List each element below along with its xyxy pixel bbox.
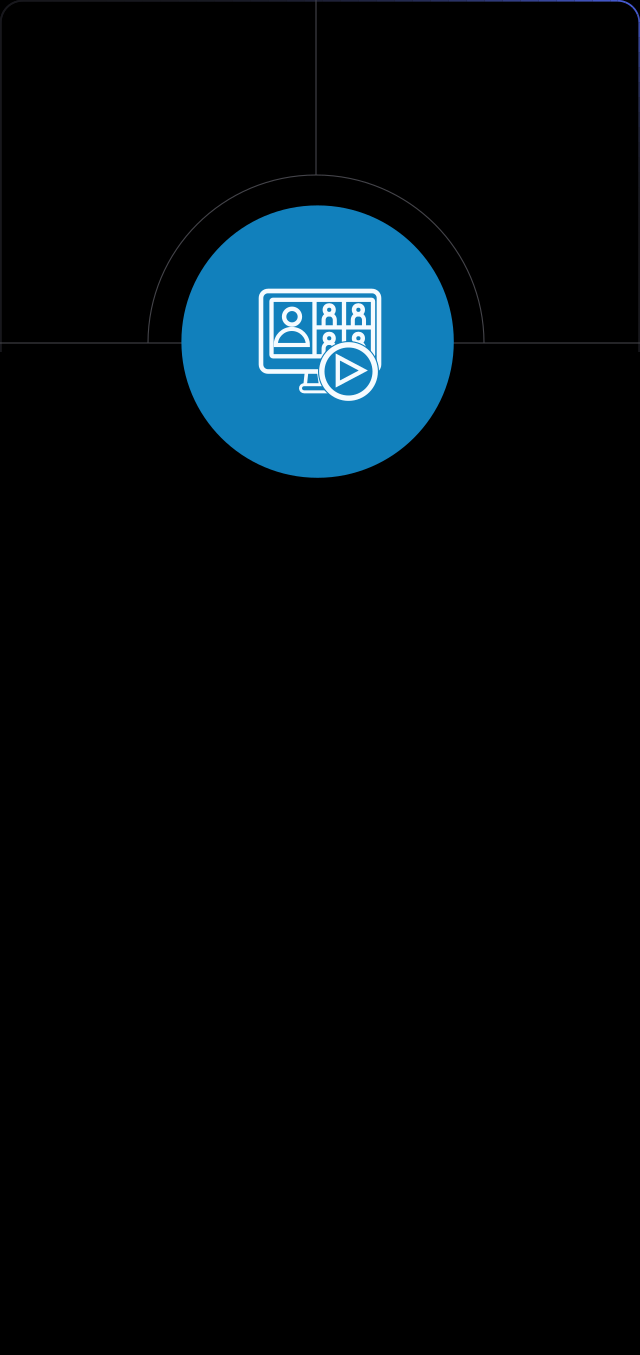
button[interactable]: Start a video meeting bbox=[181, 205, 454, 478]
